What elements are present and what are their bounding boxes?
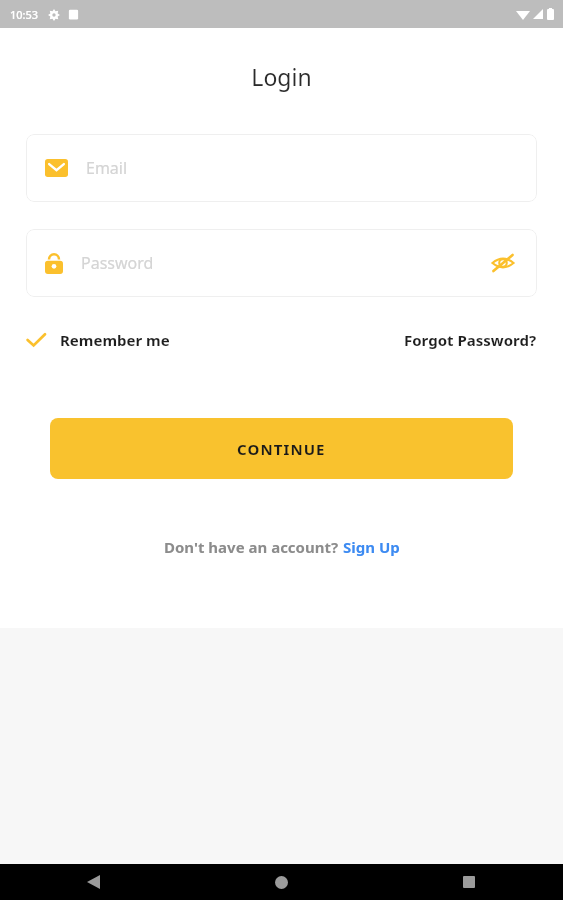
staticText: Don't have an account? xyxy=(164,537,343,557)
staticText: Email xyxy=(86,157,518,179)
button[interactable]: Back xyxy=(0,864,187,900)
staticText: Login xyxy=(0,61,563,92)
button[interactable]: Forgot Password? xyxy=(404,326,537,354)
staticText: CONTINUE xyxy=(237,439,326,459)
button[interactable]: Password xyxy=(26,229,537,297)
button[interactable]: Recent apps xyxy=(375,864,563,900)
staticText: Forgot Password? xyxy=(404,330,537,350)
button[interactable]: Remember me xyxy=(26,326,170,354)
staticText: Remember me xyxy=(60,330,170,350)
button[interactable]: Email xyxy=(26,134,537,202)
staticText: 10:53 xyxy=(10,7,39,22)
button[interactable]: Show password xyxy=(488,248,518,278)
staticText: Password xyxy=(81,252,488,274)
button[interactable]: Sign Up xyxy=(343,537,400,557)
button[interactable]: Home xyxy=(187,864,375,900)
button[interactable]: CONTINUE xyxy=(50,418,513,479)
staticText: Sign Up xyxy=(343,537,400,557)
